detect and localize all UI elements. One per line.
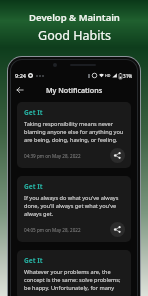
staticText: 31% xyxy=(123,73,133,79)
staticText: Whatever your problems are, the concept … xyxy=(24,268,125,294)
button[interactable]: Share xyxy=(110,222,125,237)
staticText: Get It xyxy=(24,108,43,117)
staticText: Develop & Maintain xyxy=(29,11,120,24)
staticText: 04:05 pm on May 28, 2022 xyxy=(24,227,81,233)
staticText: HD xyxy=(105,73,111,78)
staticText: My Notifications xyxy=(46,85,103,95)
staticText: Good Habits xyxy=(38,27,111,44)
staticText: 9:24 xyxy=(15,72,26,79)
staticText: Get It xyxy=(24,182,43,191)
button[interactable]: Back xyxy=(13,83,27,97)
button[interactable]: Get It xyxy=(17,176,131,242)
button[interactable]: Share xyxy=(110,148,125,163)
button[interactable]: Get It xyxy=(17,250,131,296)
staticText: 04:39 pm on May 28, 2022 xyxy=(24,153,81,159)
staticText: Taking responsibility means never blamin… xyxy=(24,120,125,144)
staticText: If you always do what you've always done… xyxy=(24,194,125,218)
button[interactable]: Get It xyxy=(17,102,131,168)
staticText: Get It xyxy=(24,256,43,265)
